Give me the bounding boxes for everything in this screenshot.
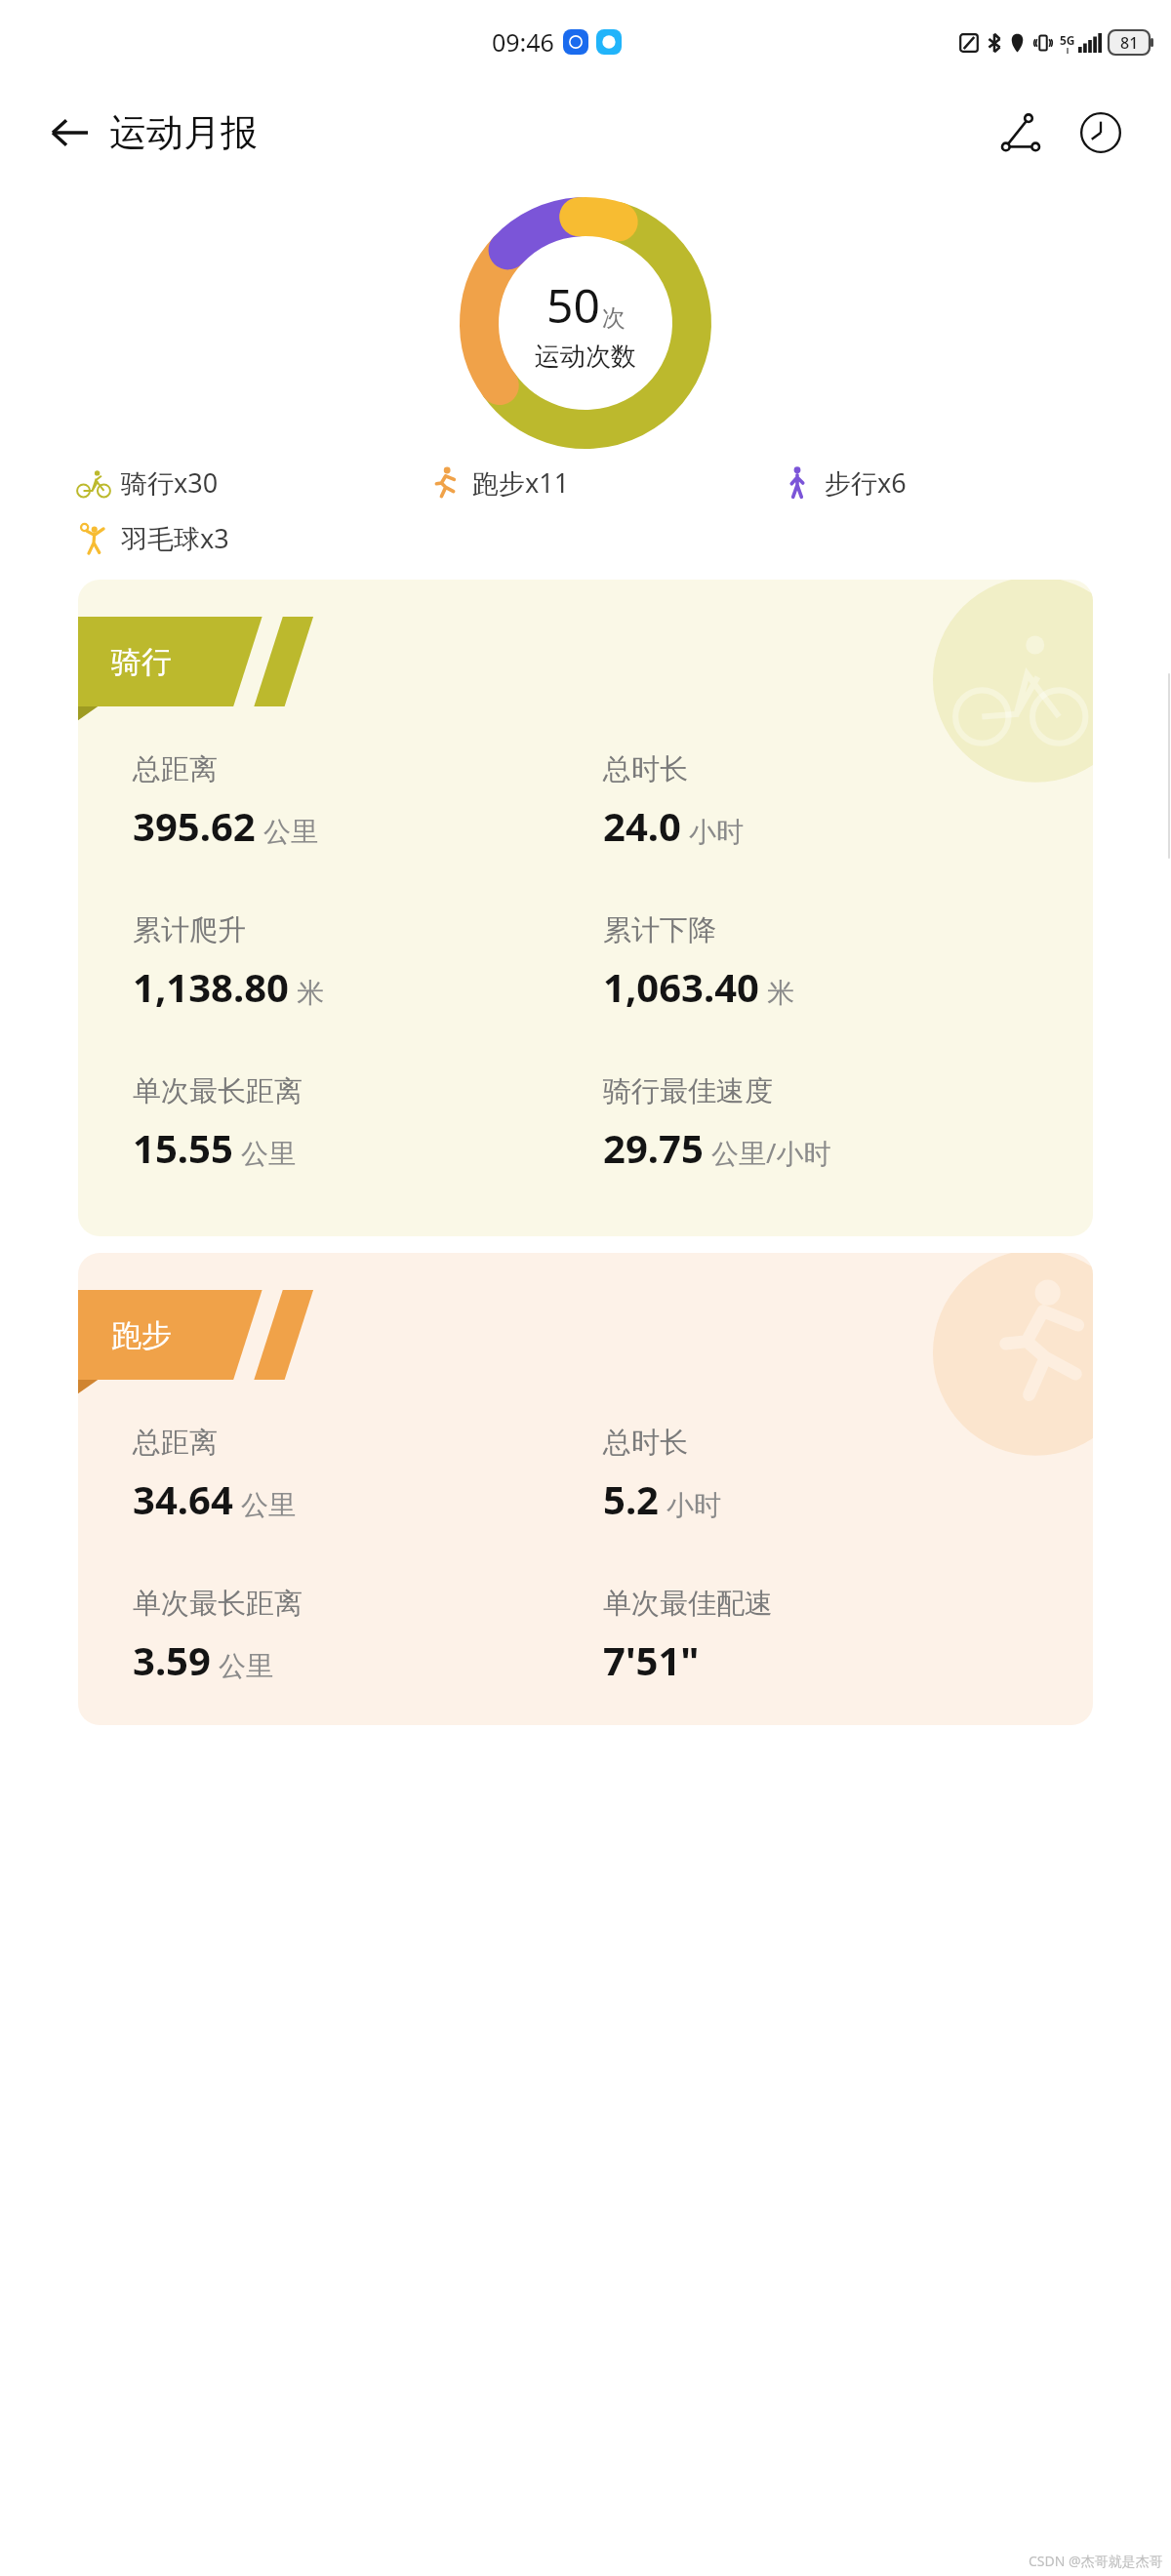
staticText: 24.0 [603,799,681,852]
staticText: 次 [602,303,626,333]
staticText: 公里 [263,815,318,849]
staticText: 15.55 [133,1121,233,1174]
staticText: 累计下降 [603,912,716,948]
staticText: 29.75 [603,1121,704,1174]
staticText: 50 [546,273,600,337]
staticText: 09:46 [492,25,554,59]
staticText: 总时长 [603,751,688,787]
staticText: 米 [297,976,324,1010]
staticText: 3.59 [133,1633,211,1686]
staticText: 5.2 [603,1472,659,1525]
staticText: 跑步 [111,1316,172,1354]
staticText: 81 [1120,32,1139,54]
button[interactable]: 步行x6 [780,464,1132,501]
staticText: 公里 [241,1488,296,1522]
staticText: 公里 [219,1649,273,1683]
staticText: 运动月报 [109,109,258,156]
staticText: 骑行最佳速度 [603,1073,773,1109]
button[interactable]: 骑行x30 [76,464,427,501]
staticText: 1,138.80 [133,960,289,1013]
staticText: 总时长 [603,1425,688,1461]
staticText: 5G [1060,32,1075,48]
staticText: 累计爬升 [133,912,246,948]
staticText: 395.62 [133,799,256,852]
staticText: 单次最长距离 [133,1073,303,1109]
button[interactable]: 骑行 [78,580,1093,1236]
button[interactable]: 羽毛球x3 [76,520,428,556]
staticText: 总距离 [133,751,218,787]
button[interactable]: Back [43,105,98,160]
staticText: 单次最长距离 [133,1586,303,1622]
staticText: 跑步x11 [472,464,570,501]
button[interactable]: Share [989,101,1052,164]
staticText: 运动次数 [535,341,636,373]
staticText: 羽毛球x3 [121,520,229,556]
staticText: 公里/小时 [711,1134,831,1171]
staticText: 步行x6 [825,464,907,501]
staticText: 7'51" [603,1633,700,1686]
staticText: 骑行x30 [121,464,219,501]
staticText: 公里 [241,1137,296,1171]
staticText: 米 [767,976,794,1010]
staticText: 小时 [689,815,744,849]
button[interactable]: 跑步 [78,1253,1093,1725]
staticText: CSDN @杰哥就是杰哥 [1029,2552,1163,2570]
staticText: 1,063.40 [603,960,759,1013]
staticText: 小时 [666,1488,721,1522]
staticText: 骑行 [111,643,172,681]
button[interactable]: 跑步x11 [427,464,780,501]
staticText: 单次最佳配速 [603,1586,773,1622]
staticText: 总距离 [133,1425,218,1461]
button[interactable]: History [1070,101,1132,164]
staticText: 34.64 [133,1472,233,1525]
